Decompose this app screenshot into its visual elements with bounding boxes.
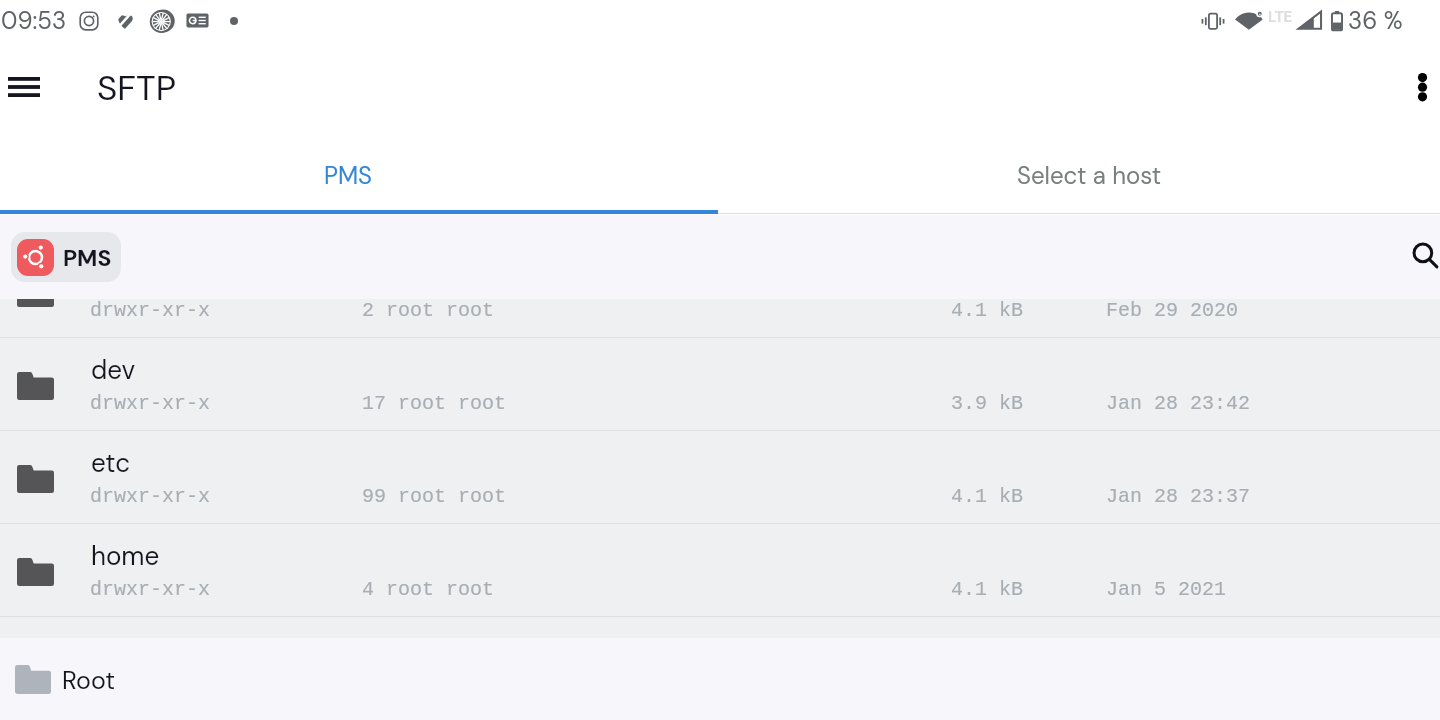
staticText: Feb 29 2020	[1106, 299, 1239, 322]
staticText: etc	[91, 446, 131, 480]
button[interactable]: etc	[0, 431, 1440, 523]
staticText: Root	[62, 664, 116, 697]
staticText: Jan 28 23:42	[1106, 392, 1251, 415]
button[interactable]: PMS	[11, 232, 121, 282]
staticText: Select a host	[1017, 160, 1162, 191]
staticText: drwxr-xr-x	[90, 299, 211, 322]
staticText: LTE	[1268, 7, 1293, 27]
staticText: 17 root root	[362, 392, 507, 415]
button[interactable]: Search	[1403, 233, 1440, 279]
staticText: drwxr-xr-x	[90, 392, 211, 415]
staticText: 4 root root	[362, 578, 495, 601]
staticText: 4.1 kB	[951, 485, 1024, 508]
button[interactable]: Select a host	[718, 133, 1440, 211]
button[interactable]: home	[0, 524, 1440, 616]
staticText: 99 root root	[362, 485, 507, 508]
button[interactable]: Open navigation drawer	[0, 63, 48, 111]
staticText: 2 root root	[362, 299, 495, 322]
staticText: 4.1 kB	[951, 299, 1024, 322]
staticText: 4.1 kB	[951, 578, 1024, 601]
staticText: Jan 28 23:37	[1106, 485, 1251, 508]
button[interactable]: PMS	[0, 133, 718, 211]
staticText: PMS	[324, 160, 373, 191]
staticText: Jan 5 2021	[1106, 578, 1227, 601]
staticText: 3.9 kB	[951, 392, 1024, 415]
staticText: home	[91, 539, 160, 573]
button[interactable]: dev	[0, 338, 1440, 430]
button[interactable]: Root	[0, 653, 132, 706]
staticText: 36 %	[1348, 5, 1403, 36]
staticText: PMS	[63, 243, 112, 273]
staticText: 09:53	[1, 5, 67, 36]
staticText: drwxr-xr-x	[90, 485, 211, 508]
staticText: dev	[91, 353, 136, 387]
staticText: drwxr-xr-x	[90, 578, 211, 601]
button[interactable]: More options	[1398, 63, 1440, 111]
staticText: SFTP	[97, 65, 176, 111]
button[interactable]: bin	[0, 299, 1440, 337]
